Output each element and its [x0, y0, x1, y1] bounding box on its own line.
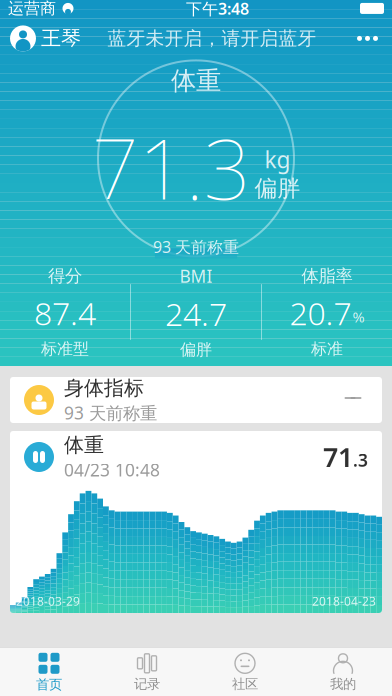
- staticText: 71.3: [91, 112, 250, 222]
- staticText: 我的: [330, 676, 356, 692]
- staticText: 偏胖: [180, 340, 212, 360]
- staticText: .3: [353, 448, 368, 471]
- button[interactable]: 我的: [294, 648, 392, 696]
- staticText: 运营商: [8, 0, 56, 18]
- staticText: 20.7: [289, 292, 351, 334]
- button[interactable]: 首页: [0, 647, 98, 696]
- staticText: 得分: [48, 265, 82, 287]
- staticText: 93 天前称重: [153, 236, 239, 257]
- staticText: 体重: [64, 433, 104, 457]
- staticText: 社区: [232, 676, 258, 692]
- staticText: 标准型: [41, 339, 89, 359]
- button[interactable]: 身体指标: [10, 377, 382, 423]
- button[interactable]: 体重: [10, 431, 382, 613]
- staticText: kg: [264, 144, 290, 174]
- staticText: 体脂率: [301, 265, 352, 287]
- staticText: 蓝牙未开启，请开启蓝牙: [107, 27, 316, 50]
- staticText: %: [352, 307, 364, 327]
- button[interactable]: More: [343, 24, 392, 53]
- staticText: 标准: [311, 339, 343, 359]
- staticText: 04/23 10:48: [64, 458, 160, 481]
- staticText: 93 天前称重: [64, 401, 157, 424]
- staticText: 记录: [134, 676, 160, 692]
- staticText: 身体指标: [64, 376, 144, 400]
- staticText: 首页: [36, 676, 62, 693]
- button[interactable]: 社区: [196, 648, 294, 696]
- staticText: 71: [323, 439, 353, 475]
- staticText: 24.7: [165, 292, 227, 335]
- staticText: BMI: [179, 264, 212, 287]
- staticText: 下午3:48: [186, 0, 249, 19]
- staticText: 2018-04-23: [312, 593, 376, 609]
- staticText: 2018-03-29: [16, 593, 80, 609]
- staticText: 体重: [171, 65, 221, 96]
- button[interactable]: 记录: [98, 648, 196, 696]
- staticText: 王琴: [41, 26, 81, 51]
- staticText: 偏胖: [254, 174, 300, 202]
- button[interactable]: 王琴: [0, 19, 81, 57]
- staticText: 87.4: [34, 292, 96, 334]
